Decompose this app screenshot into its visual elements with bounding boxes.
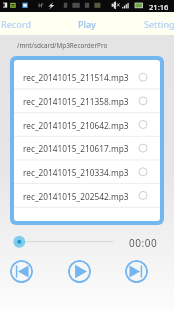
button[interactable]: rec_20141015_202542.mp3: [14, 184, 160, 208]
staticText: /mnt/sdcard/Mp3RecorderPro: [17, 41, 108, 50]
staticText: Record: [1, 18, 31, 30]
staticText: rec_20141015_210334.mp3: [23, 167, 129, 178]
staticText: rec_20141015_211358.mp3: [23, 96, 129, 107]
button[interactable]: Next: [125, 260, 148, 283]
button[interactable]: rec_20141015_211358.mp3: [14, 89, 160, 113]
button[interactable]: Previous: [10, 260, 33, 283]
button[interactable]: rec_20141015_210642.mp3: [14, 113, 160, 137]
staticText: rec_20141015_210642.mp3: [23, 120, 129, 131]
staticText: 00:00: [129, 236, 158, 250]
staticText: Play: [78, 18, 96, 30]
staticText: Setting: [144, 18, 174, 30]
button[interactable]: rec_20141015_210334.mp3: [14, 160, 160, 184]
staticText: rec_20141015_211514.mp3: [23, 72, 129, 83]
button[interactable]: Record: [0, 12, 52, 35]
staticText: rec_20141015_210617.mp3: [23, 143, 129, 154]
staticText: 21:16: [149, 2, 169, 12]
button[interactable]: Play: [51, 12, 123, 35]
staticText: rec_20141015_202542.mp3: [23, 191, 129, 202]
button[interactable]: rec_20141015_211514.mp3: [14, 65, 160, 89]
button[interactable]: rec_20141015_210617.mp3: [14, 136, 160, 160]
button[interactable]: Setting: [123, 12, 174, 35]
button[interactable]: Play: [68, 260, 91, 283]
